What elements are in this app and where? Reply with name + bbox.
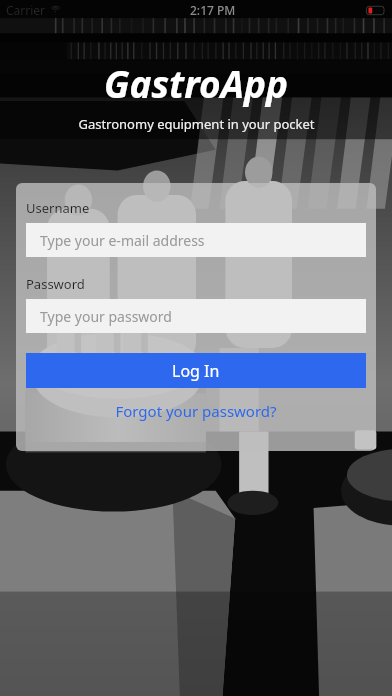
staticText: Type your e-mail address	[40, 231, 205, 250]
staticText: Username	[26, 199, 90, 217]
button[interactable]: Type your e-mail address	[26, 223, 366, 257]
button[interactable]: Type your password	[26, 299, 366, 333]
staticText: Carrier	[6, 2, 46, 18]
staticText: Password	[26, 275, 85, 293]
staticText: Forgot your password?	[115, 401, 277, 421]
staticText: 2:17 PM	[190, 2, 236, 18]
button[interactable]: Forgot your password?	[26, 401, 366, 421]
staticText: GastroApp	[104, 58, 288, 108]
staticText: Type your password	[40, 307, 172, 326]
staticText: Log In	[172, 360, 220, 382]
button[interactable]: Log In	[26, 353, 366, 388]
staticText: Gastronomy equipment in your pocket	[78, 115, 315, 133]
